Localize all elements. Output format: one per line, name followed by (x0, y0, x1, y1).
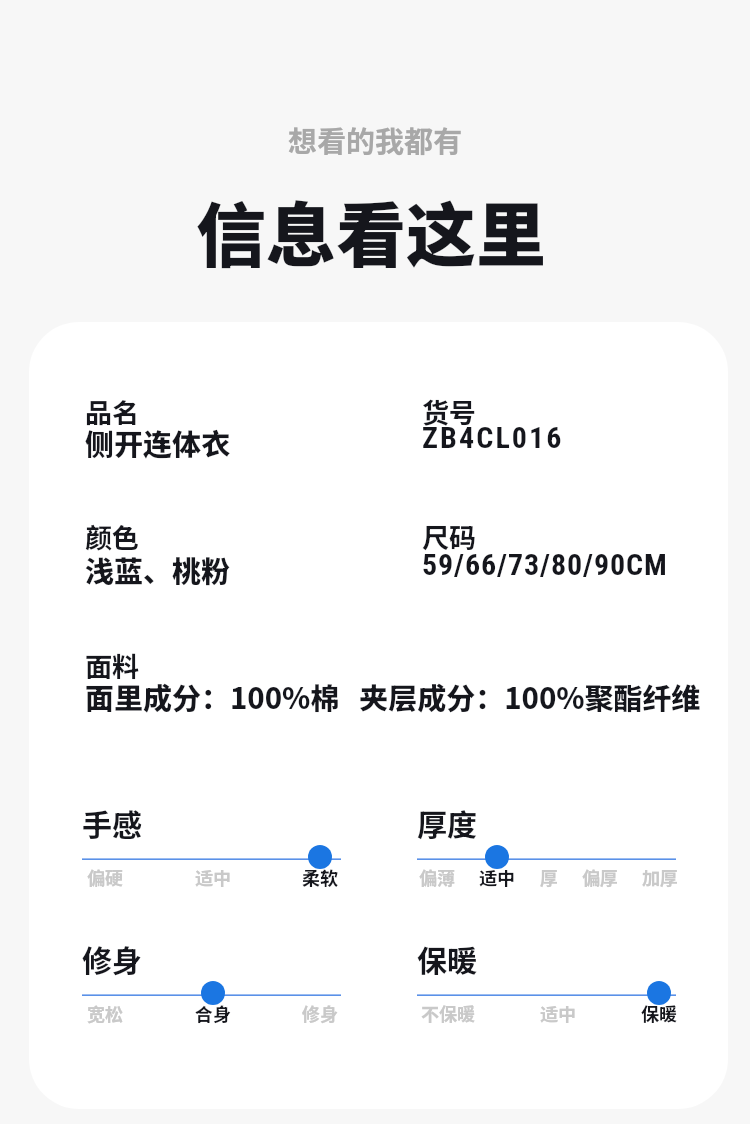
staticText: 加厚 (642, 864, 678, 890)
staticText: 尺码 (422, 517, 476, 556)
button[interactable] (417, 983, 676, 1007)
staticText: 浅蓝、桃粉 (85, 548, 231, 590)
button[interactable] (417, 847, 676, 871)
staticText: 货号 (422, 392, 476, 431)
staticText: 合身 (195, 1000, 231, 1026)
staticText: 宽松 (87, 1000, 123, 1026)
staticText: 厚度 (417, 801, 477, 844)
staticText: 偏硬 (87, 864, 123, 890)
staticText: 偏薄 (419, 864, 455, 890)
staticText: 保暖 (417, 937, 477, 980)
staticText: 59/66/73/80/90CM (422, 547, 668, 582)
button[interactable] (82, 847, 341, 871)
staticText: 保暖 (641, 1000, 677, 1026)
staticText: 信息看这里 (0, 180, 746, 281)
staticText: 适中 (540, 1000, 576, 1026)
button[interactable] (82, 983, 341, 1007)
staticText: 修身 (82, 937, 142, 980)
staticText: 面料 (85, 646, 139, 685)
staticText: 适中 (195, 864, 231, 890)
staticText: 不保暖 (421, 1000, 475, 1026)
staticText: 厚 (540, 864, 558, 890)
staticText: 适中 (479, 864, 515, 890)
staticText: 面里成分：100%棉 夹层成分：100%聚酯纤维 (85, 675, 701, 717)
staticText: 颜色 (85, 517, 139, 556)
staticText: 想看的我都有 (0, 118, 750, 160)
staticText: 偏厚 (582, 864, 618, 890)
staticText: 侧开连体衣 (85, 421, 231, 463)
staticText: 品名 (85, 392, 139, 431)
staticText: 修身 (302, 1000, 338, 1026)
staticText: 手感 (82, 801, 142, 844)
staticText: ZB4CL016 (422, 420, 564, 455)
staticText: 柔软 (302, 864, 338, 890)
